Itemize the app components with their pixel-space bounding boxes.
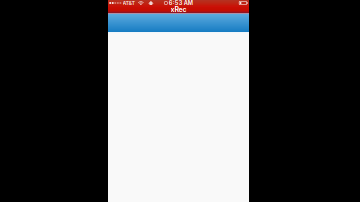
staticText: 6:53 AM	[169, 0, 193, 6]
staticText: AT&T	[122, 0, 135, 6]
button[interactable]: Banner	[108, 13, 249, 32]
staticText: xRec	[170, 5, 186, 14]
